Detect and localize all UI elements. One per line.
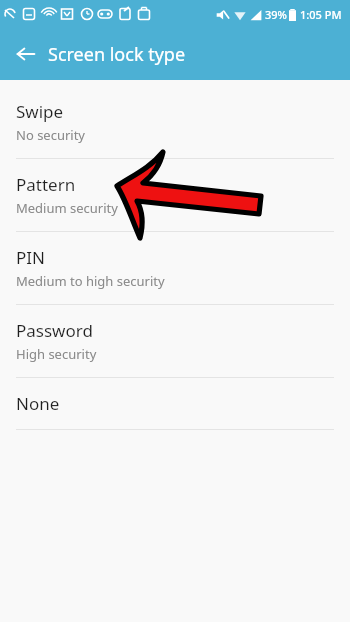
staticText: Password — [16, 319, 93, 342]
staticText: No security — [16, 126, 86, 144]
staticText: Screen lock type — [48, 42, 186, 67]
staticText: 1:05 PM — [300, 7, 342, 22]
staticText: PIN — [16, 246, 45, 269]
button[interactable]: Swipe — [0, 86, 350, 158]
staticText: Swipe — [16, 100, 64, 123]
button[interactable]: Password — [0, 305, 350, 377]
staticText: Medium to high security — [16, 272, 165, 290]
staticText: High security — [16, 345, 97, 363]
staticText: None — [16, 392, 60, 415]
button[interactable]: Pattern — [0, 159, 350, 231]
button[interactable]: None — [0, 378, 350, 429]
button[interactable]: Navigate up — [10, 38, 42, 70]
staticText: Medium security — [16, 199, 118, 217]
staticText: 39% — [265, 7, 287, 22]
staticText: Pattern — [16, 173, 76, 196]
button[interactable]: PIN — [0, 232, 350, 304]
